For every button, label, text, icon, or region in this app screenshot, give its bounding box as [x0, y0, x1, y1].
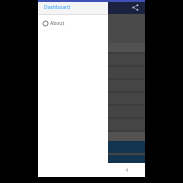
- button[interactable]: [38, 91, 145, 93]
- button[interactable]: [38, 78, 145, 80]
- button[interactable]: Disable: [38, 16, 145, 24]
- button[interactable]: [38, 54, 145, 65]
- button[interactable]: [38, 106, 145, 117]
- button[interactable]: Back: [109, 163, 145, 177]
- button[interactable]: [38, 155, 145, 163]
- button[interactable]: [38, 52, 145, 54]
- button[interactable]: [38, 67, 145, 78]
- staticText: About: [50, 20, 65, 27]
- button[interactable]: [38, 141, 145, 153]
- button[interactable]: Info: [38, 27, 145, 35]
- button[interactable]: [38, 153, 145, 155]
- button[interactable]: [38, 43, 145, 52]
- staticText: Dashboard: [44, 4, 71, 11]
- button[interactable]: About: [38, 18, 108, 28]
- button[interactable]: [38, 119, 145, 130]
- button[interactable]: [38, 117, 145, 119]
- button[interactable]: [38, 104, 145, 106]
- button[interactable]: [38, 130, 145, 132]
- button[interactable]: [38, 80, 145, 91]
- button[interactable]: Share: [130, 2, 140, 12]
- button[interactable]: [38, 65, 145, 67]
- button[interactable]: [38, 132, 145, 141]
- button[interactable]: [38, 93, 145, 104]
- staticText: Disable: [40, 17, 58, 24]
